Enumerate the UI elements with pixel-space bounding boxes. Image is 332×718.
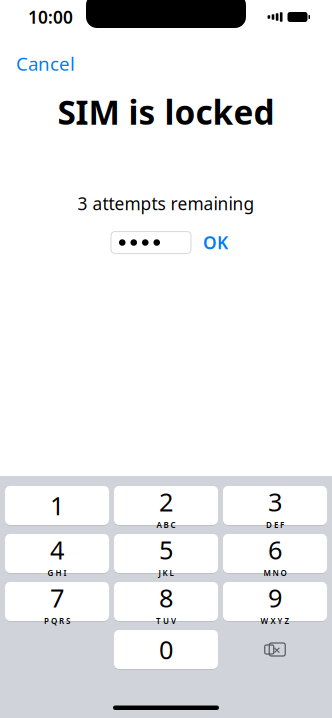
- staticText: Cancel: [16, 51, 75, 76]
- staticText: OK: [203, 231, 228, 254]
- button[interactable]: OK: [199, 227, 232, 258]
- staticText: 8: [159, 581, 173, 614]
- staticText: A B C: [156, 519, 175, 530]
- staticText: 10:00: [28, 5, 73, 28]
- button[interactable]: 0: [114, 629, 218, 670]
- staticText: 5: [159, 533, 173, 566]
- button[interactable]: 3: [223, 485, 327, 526]
- staticText: M N O: [263, 567, 286, 578]
- button[interactable]: Cancel: [0, 45, 91, 82]
- staticText: 3 attempts remaining: [77, 192, 254, 215]
- staticText: 7: [50, 581, 64, 614]
- staticText: 4: [50, 533, 64, 566]
- button[interactable]: Delete: [223, 630, 327, 669]
- staticText: T U V: [156, 615, 176, 626]
- staticText: SIM is locked: [57, 90, 274, 134]
- staticText: ×: [273, 641, 281, 658]
- staticText: 6: [268, 533, 282, 566]
- button[interactable]: 8: [114, 581, 218, 622]
- staticText: D E F: [266, 519, 284, 530]
- staticText: W X Y Z: [260, 615, 289, 626]
- staticText: P Q R S: [44, 615, 70, 626]
- staticText: 9: [268, 581, 282, 614]
- staticText: 0: [159, 633, 173, 666]
- staticText: J K L: [158, 567, 173, 578]
- button[interactable]: 6: [223, 533, 327, 574]
- staticText: G H I: [47, 567, 66, 578]
- button[interactable]: 5: [114, 533, 218, 574]
- staticText: 2: [159, 485, 173, 518]
- button[interactable]: 9: [223, 581, 327, 622]
- button[interactable]: 2: [114, 485, 218, 526]
- button[interactable]: 1: [5, 485, 109, 526]
- button[interactable]: 7: [5, 581, 109, 622]
- staticText: 1: [50, 489, 64, 522]
- button[interactable]: 4: [5, 533, 109, 574]
- staticText: 3: [268, 485, 282, 518]
